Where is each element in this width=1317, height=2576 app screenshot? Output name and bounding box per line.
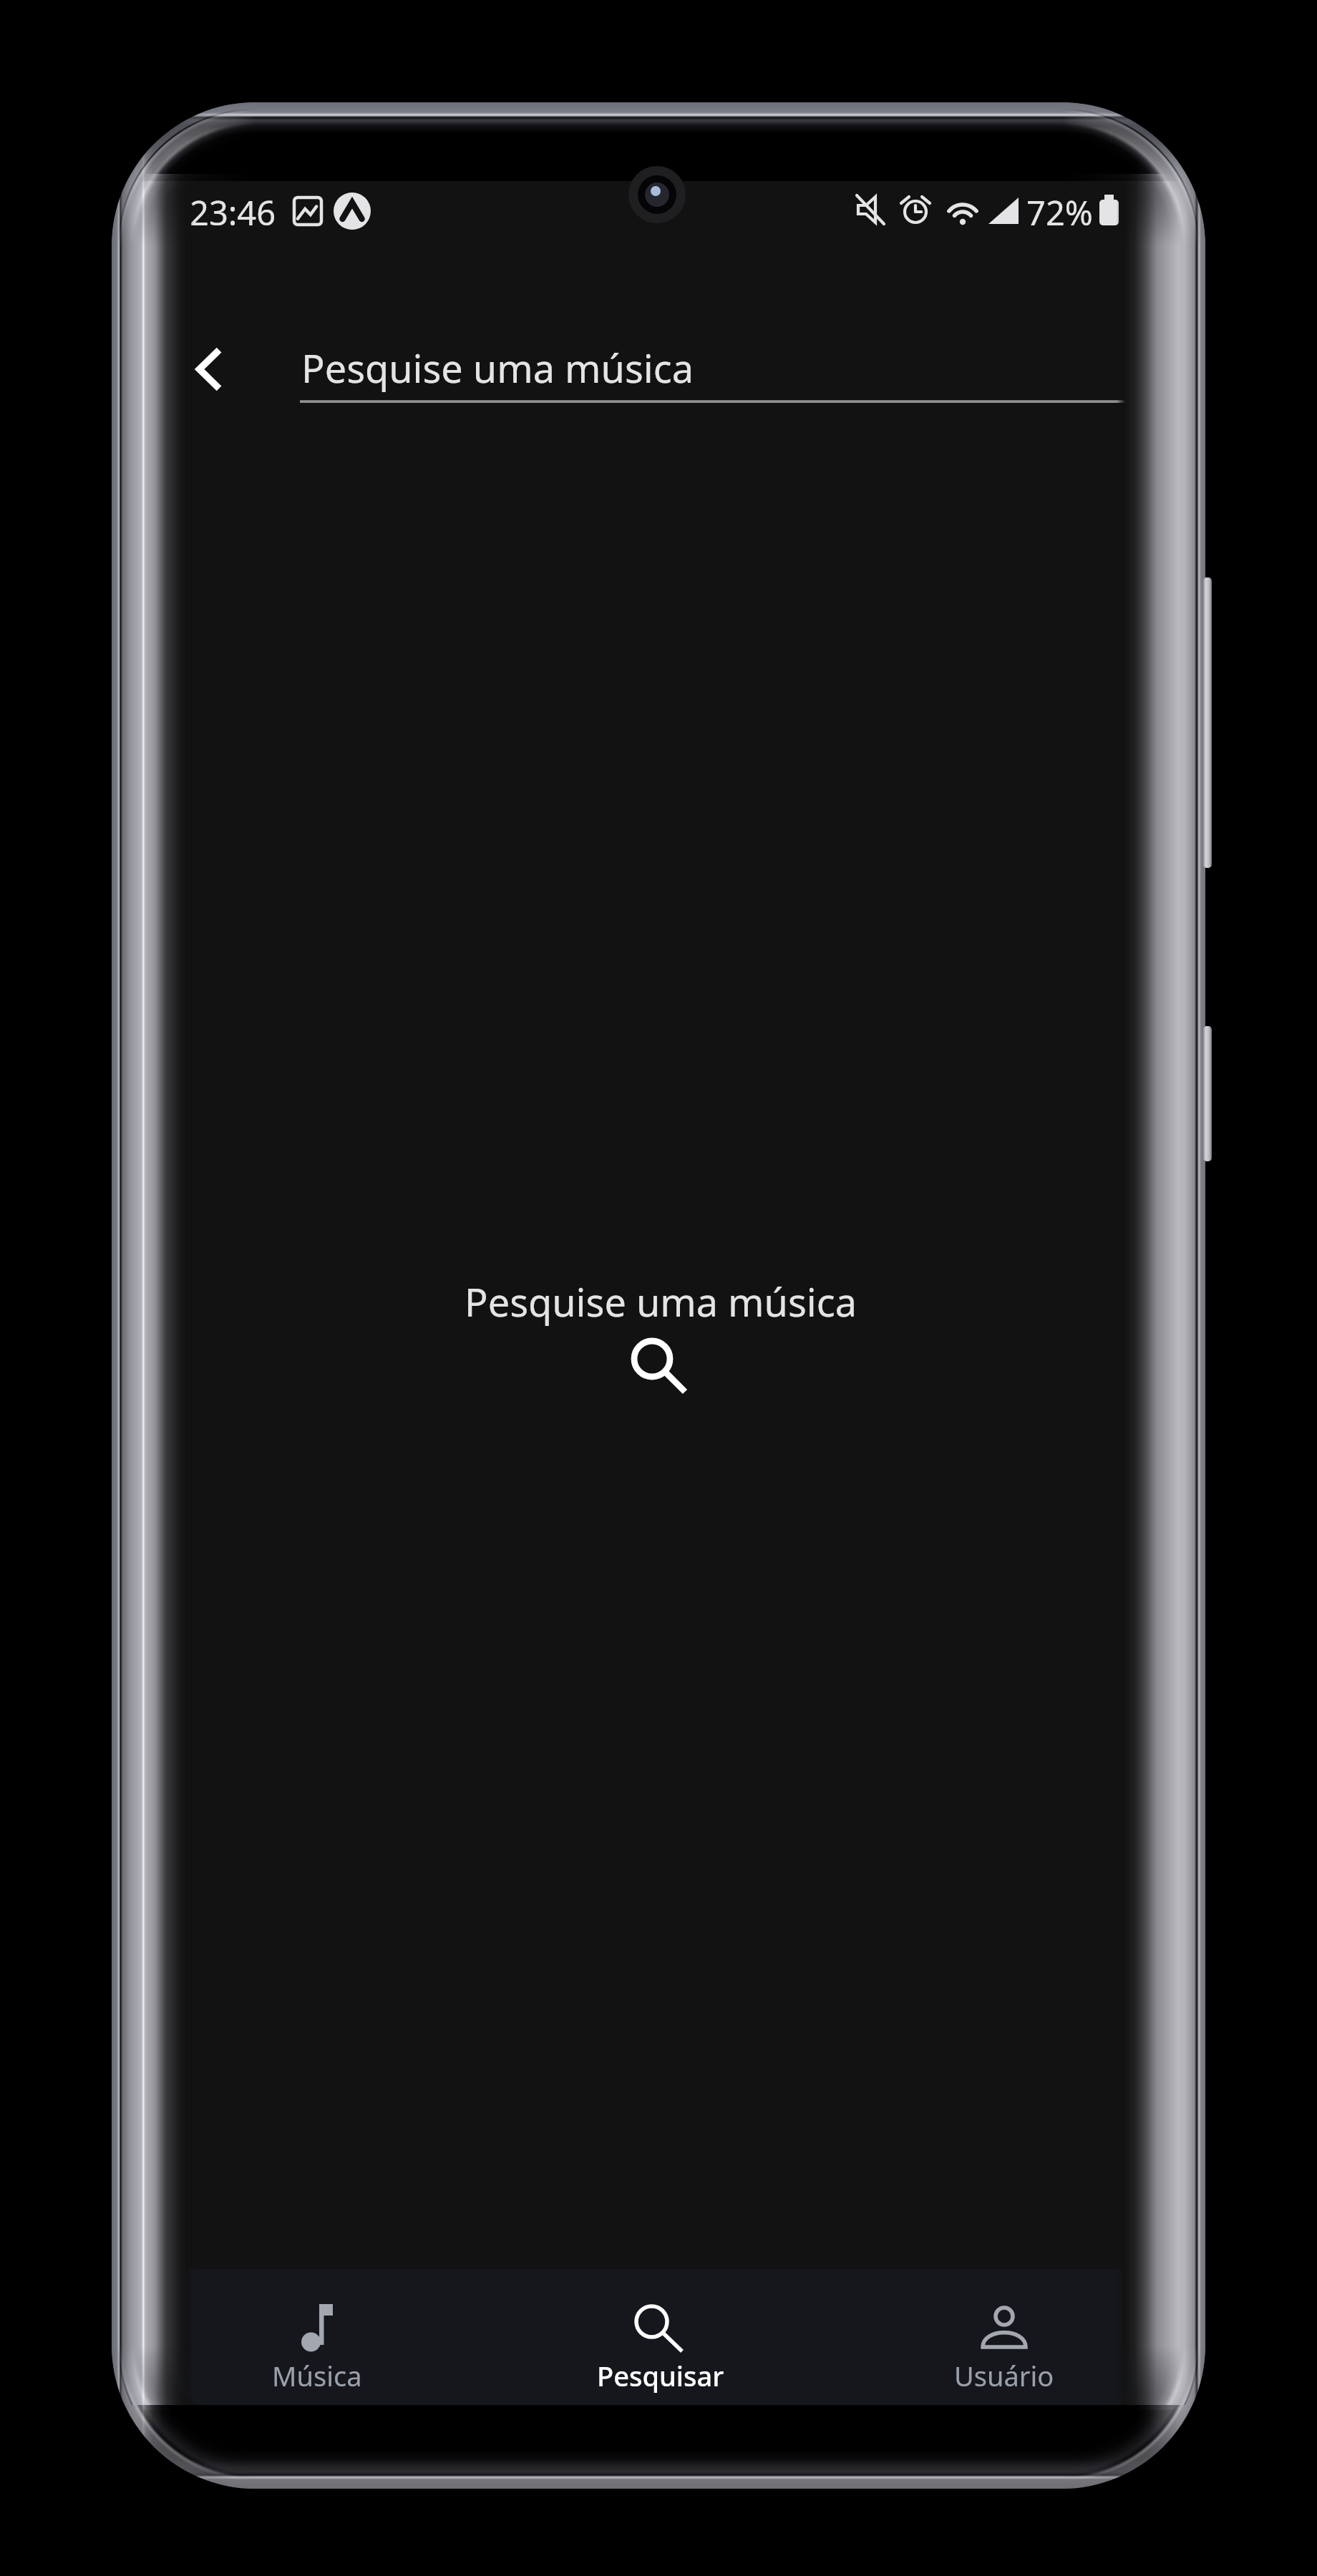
button[interactable]: Usuário: [832, 2269, 1176, 2405]
staticText: 23:46: [190, 190, 276, 235]
button[interactable]: Back: [169, 329, 249, 409]
staticText: Pesquise uma música: [301, 341, 694, 394]
staticText: Música: [272, 2357, 362, 2394]
staticText: 72%: [1026, 190, 1093, 235]
button[interactable]: Pesquisar: [489, 2269, 832, 2405]
button[interactable]: Música: [145, 2269, 489, 2405]
button[interactable]: Pesquise uma música: [300, 326, 1150, 403]
staticText: Usuário: [954, 2357, 1054, 2394]
staticText: Pesquise uma música: [465, 1275, 857, 1328]
staticText: Pesquisar: [597, 2357, 724, 2394]
